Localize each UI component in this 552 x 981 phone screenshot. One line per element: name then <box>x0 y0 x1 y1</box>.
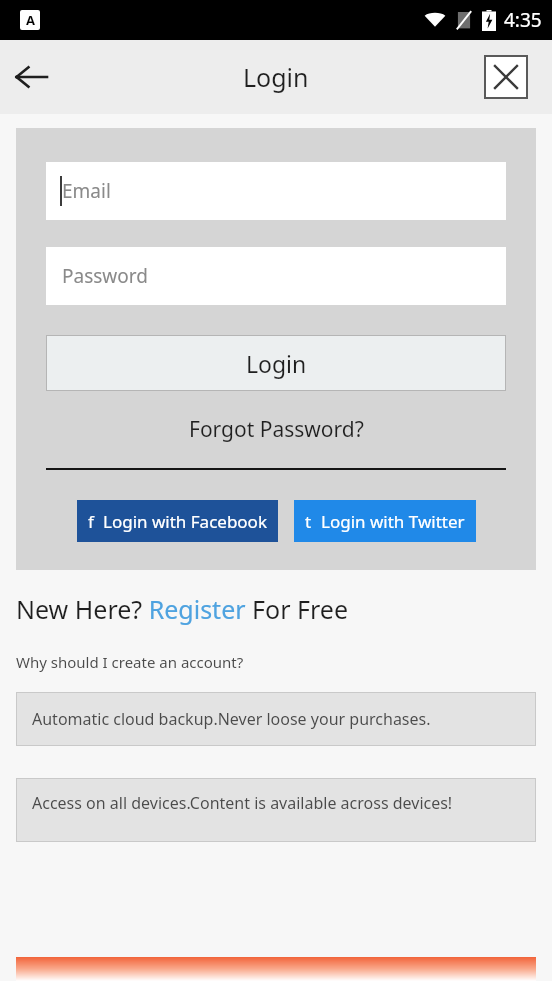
button[interactable]: Automatic cloud backup.Never loose your … <box>16 692 536 746</box>
staticText: Login with Facebook <box>103 510 267 533</box>
staticText: Automatic cloud backup.Never loose your … <box>32 708 431 730</box>
button[interactable]: Password <box>46 247 506 305</box>
button[interactable] <box>16 957 536 981</box>
button[interactable]: Email <box>46 162 506 220</box>
staticText: Access on all devices.Content is availab… <box>32 792 453 814</box>
staticText: Login <box>243 60 309 94</box>
staticText: Forgot Password? <box>189 415 364 444</box>
button[interactable]: Close <box>484 55 528 99</box>
staticText: Why should I create an account? <box>16 652 244 672</box>
staticText: New Here? Register For Free <box>16 592 348 626</box>
button[interactable]: Back <box>0 46 62 108</box>
button[interactable]: Forgot Password? <box>46 415 506 444</box>
staticText: f <box>88 510 94 533</box>
staticText: Login <box>246 348 307 379</box>
staticText: Password <box>62 263 148 289</box>
button[interactable]: New Here? Register For Free <box>0 592 552 626</box>
button[interactable]: t <box>294 500 476 542</box>
staticText: A <box>26 11 35 29</box>
button[interactable]: Login <box>46 335 506 391</box>
button[interactable]: Access on all devices.Content is availab… <box>16 778 536 842</box>
staticText: Email <box>62 178 111 204</box>
staticText: t <box>305 510 312 533</box>
button[interactable]: f <box>77 500 278 542</box>
staticText: 4:35 <box>504 7 542 33</box>
staticText: Login with Twitter <box>321 510 465 533</box>
